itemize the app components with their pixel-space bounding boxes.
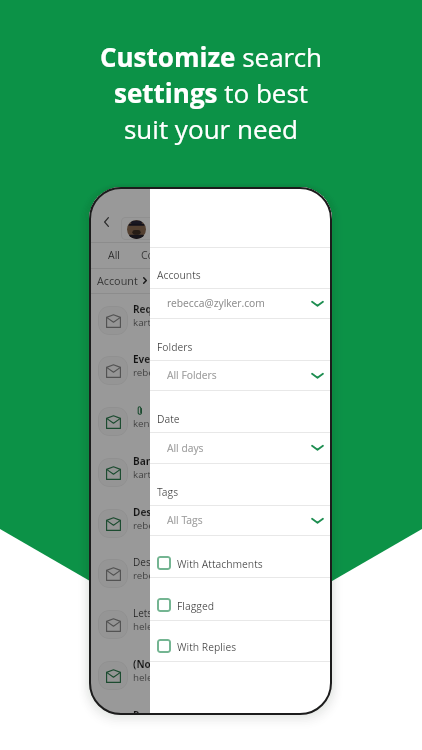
staticText: All — [108, 248, 120, 262]
button[interactable]: All Folders — [150, 360, 332, 390]
staticText: Folders — [157, 340, 193, 354]
button[interactable]: Review notes — [89, 701, 332, 715]
staticText: helen@zylker.com — [133, 671, 217, 684]
button[interactable]: rebecca@zylker.com — [150, 288, 332, 318]
button[interactable]: Bank statement — [89, 447, 332, 498]
button[interactable]: With Attachments — [150, 535, 332, 578]
staticText: All Tags — [167, 513, 203, 527]
staticText: Customize search settings to best suit y… — [0, 39, 422, 147]
staticText: karthik@zylker.com — [133, 468, 223, 481]
staticText: Request for quote — [133, 302, 223, 316]
button[interactable]: Profile — [127, 220, 146, 239]
staticText: rebecca@zylker.com — [133, 366, 227, 379]
staticText: Tags — [157, 485, 179, 499]
button[interactable]: Lets catch up — [89, 599, 332, 650]
button[interactable]: Request for quote — [89, 295, 332, 346]
staticText: Accounts — [157, 268, 201, 282]
button[interactable]: Back — [100, 214, 112, 230]
button[interactable]: Contacts — [139, 242, 191, 268]
staticText: Review notes — [133, 708, 199, 715]
staticText: Monthly report — [150, 403, 227, 417]
button[interactable]: All days — [150, 432, 332, 463]
staticText: Design updates — [133, 555, 206, 569]
staticText: All Folders — [167, 368, 217, 382]
staticText: Lets catch up — [133, 606, 195, 620]
button[interactable]: Flagged — [150, 577, 332, 620]
staticText: Date — [157, 412, 180, 426]
button[interactable]: All Tags — [150, 505, 332, 535]
button[interactable]: With Replies — [150, 620, 332, 661]
button[interactable] — [121, 217, 327, 240]
staticText: (No Subject) — [133, 657, 194, 671]
staticText: All days — [167, 441, 204, 455]
staticText: helen@zylker.com — [133, 620, 217, 633]
staticText: With Replies — [177, 640, 237, 654]
button[interactable]: Monthly report — [89, 396, 332, 447]
staticText: Design review — [133, 505, 203, 519]
staticText: With Attachments — [177, 557, 263, 571]
button[interactable]: All — [89, 242, 139, 268]
button[interactable]: Design review — [89, 498, 332, 549]
staticText: rebecca@zylker.com — [167, 296, 265, 310]
staticText: Contacts — [141, 248, 184, 262]
button[interactable]: Event reminder — [89, 345, 332, 396]
staticText: rebecca@zylker.com — [133, 519, 227, 532]
button[interactable]: (No Subject) — [89, 650, 332, 701]
button[interactable]: Account — [89, 268, 332, 293]
staticText: Flagged — [177, 599, 215, 613]
staticText: karthik@zylker.com — [133, 316, 223, 329]
button[interactable]: Design updates — [89, 548, 332, 599]
staticText: rebecca@zylker.com — [133, 569, 227, 582]
staticText: Bank statement — [133, 454, 214, 468]
staticText: Event reminder — [133, 352, 211, 366]
staticText: ken.smith@zylker.com — [133, 417, 236, 430]
staticText: Account — [97, 273, 138, 288]
